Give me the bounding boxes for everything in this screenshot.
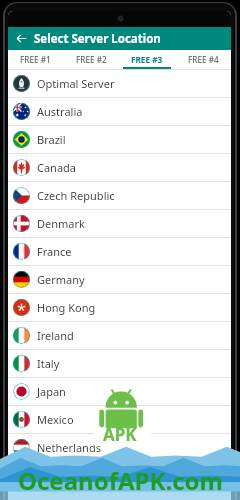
staticText: Brazil xyxy=(37,132,66,147)
staticText: FREE #2 xyxy=(76,54,107,65)
button[interactable]: France xyxy=(8,238,231,266)
staticText: Italy xyxy=(37,356,60,371)
staticText: Canada xyxy=(37,160,77,175)
staticText: Germany xyxy=(37,272,85,287)
staticText: Mexico xyxy=(37,412,74,427)
button[interactable]: Denmark xyxy=(8,210,231,238)
staticText: OceanofAPK.com xyxy=(18,464,223,497)
button[interactable]: FREE #2 xyxy=(63,50,119,69)
staticText: FREE #3 xyxy=(131,54,163,65)
button[interactable]: Mexico xyxy=(8,406,231,434)
staticText: Select Server Location xyxy=(34,31,161,47)
staticText: APK xyxy=(103,423,137,446)
staticText: Hong Kong xyxy=(37,300,96,315)
staticText: France xyxy=(37,244,72,259)
button[interactable]: Brazil xyxy=(8,126,231,154)
staticText: Optimal Server xyxy=(37,76,115,91)
button[interactable]: Optimal Server xyxy=(8,70,231,98)
button[interactable]: Canada xyxy=(8,154,231,182)
staticText: FREE #1 xyxy=(20,54,51,65)
button[interactable]: FREE #1 xyxy=(8,50,63,69)
staticText: Denmark xyxy=(37,216,85,231)
button[interactable]: Italy xyxy=(8,350,231,378)
button[interactable]: Australia xyxy=(8,98,231,126)
staticText: Czech Republic xyxy=(37,188,115,203)
button[interactable]: Netherlands xyxy=(8,434,231,462)
staticText: FREE #4 xyxy=(188,54,219,65)
button[interactable]: Germany xyxy=(8,266,231,294)
staticText: Netherlands xyxy=(37,440,101,455)
button[interactable]: FREE #4 xyxy=(175,50,231,69)
button[interactable]: FREE #3 xyxy=(119,50,175,69)
staticText: Ireland xyxy=(37,328,74,343)
button[interactable]: Czech Republic xyxy=(8,182,231,210)
button[interactable]: Japan xyxy=(8,378,231,406)
button[interactable]: Hong Kong xyxy=(8,294,231,322)
button[interactable]: Back xyxy=(8,27,34,50)
staticText: Japan xyxy=(37,384,66,399)
staticText: Australia xyxy=(37,104,83,119)
button[interactable]: Ireland xyxy=(8,322,231,350)
